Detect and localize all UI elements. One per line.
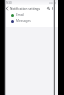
button[interactable]: Search [46,5,50,12]
staticText: Messages [16,19,31,23]
button[interactable]: Back [4,5,10,12]
button[interactable]: Email [6,12,56,18]
staticText: Email [16,13,25,17]
button[interactable]: Messages [6,18,56,24]
staticText: 9:30 [6,1,12,5]
staticText: Notification settings [10,7,41,11]
button[interactable]: More options [50,5,54,12]
